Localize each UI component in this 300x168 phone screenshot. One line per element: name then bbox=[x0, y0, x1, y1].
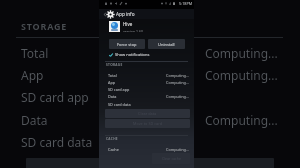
staticText: Computing... bbox=[205, 67, 278, 83]
staticText: Computing... bbox=[166, 73, 190, 78]
button[interactable]: Data bbox=[108, 93, 190, 99]
other: App info bbox=[107, 11, 114, 18]
staticText: Uninstall bbox=[158, 42, 175, 47]
staticText: SD card app bbox=[21, 89, 89, 105]
staticText: version 1.60 bbox=[123, 29, 143, 32]
staticText: Hive bbox=[123, 21, 133, 27]
other: Back bbox=[104, 12, 106, 17]
button[interactable] bbox=[26, 158, 274, 168]
staticText: SD card app bbox=[108, 87, 130, 92]
button[interactable]: Show notifications bbox=[109, 52, 150, 57]
staticText: Computing... bbox=[205, 112, 278, 128]
staticText: Move to SD card bbox=[133, 121, 162, 126]
button[interactable]: Back bbox=[99, 9, 194, 19]
button[interactable]: Total bbox=[108, 72, 190, 78]
button[interactable]: SD card data bbox=[108, 101, 190, 107]
button[interactable]: App bbox=[108, 79, 190, 85]
staticText: App info bbox=[116, 11, 135, 17]
staticText: Data bbox=[21, 112, 48, 128]
button[interactable]: Cache bbox=[108, 146, 190, 152]
staticText: Computing... bbox=[205, 45, 278, 61]
staticText: 5:18PM bbox=[179, 1, 193, 6]
staticText: Show notifications bbox=[115, 52, 150, 57]
staticText: Force stop bbox=[117, 42, 137, 47]
other: Show notifications bbox=[109, 53, 113, 57]
staticText: Total bbox=[21, 45, 49, 61]
staticText: Computing... bbox=[166, 80, 190, 85]
staticText: SD card data bbox=[21, 134, 93, 150]
staticText: Computing... bbox=[166, 94, 190, 99]
button[interactable]: Uninstall bbox=[148, 39, 185, 49]
button[interactable]: SD card app bbox=[108, 86, 190, 92]
staticText: Clear cache bbox=[162, 156, 181, 161]
staticText: App bbox=[21, 67, 44, 83]
staticText: STORAGE bbox=[106, 63, 123, 67]
staticText: Computing... bbox=[166, 147, 190, 152]
button[interactable]: Force stop bbox=[109, 39, 145, 49]
staticText: Cache bbox=[108, 147, 119, 152]
staticText: App bbox=[108, 80, 116, 85]
staticText: CACHE bbox=[106, 137, 118, 141]
staticText: STORAGE bbox=[21, 20, 68, 32]
staticText: Clear data bbox=[138, 111, 157, 116]
staticText: Total bbox=[108, 73, 117, 78]
staticText: Data bbox=[108, 94, 117, 99]
staticText: SD card data bbox=[108, 102, 131, 107]
button[interactable]: Hive bbox=[109, 21, 143, 32]
